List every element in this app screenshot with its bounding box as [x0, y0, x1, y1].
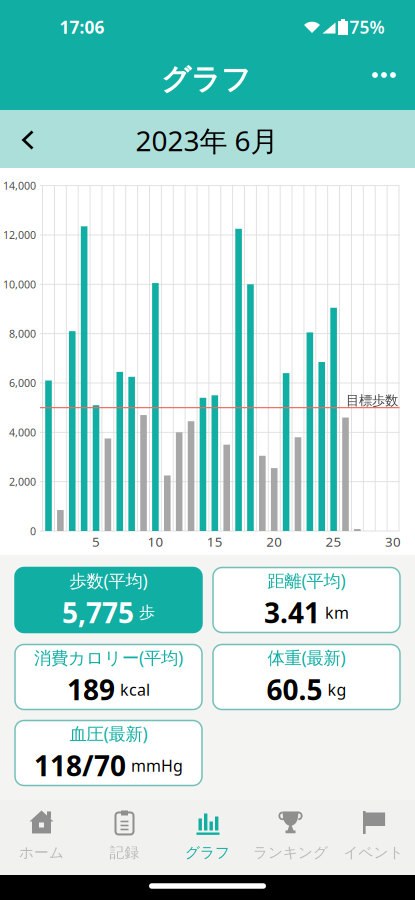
staticText: 118/70	[34, 747, 126, 784]
staticText: 歩数(平均)	[69, 569, 147, 592]
staticText: 15	[207, 533, 223, 550]
staticText: 75%	[349, 15, 384, 38]
button[interactable]	[372, 72, 396, 78]
button[interactable]: 体重(最新)	[213, 644, 400, 709]
button[interactable]: 記録	[83, 800, 166, 875]
staticText: 5,775	[62, 594, 134, 631]
staticText: 2,000	[9, 475, 36, 489]
button[interactable]: 消費カロリー(平均)	[15, 644, 202, 709]
staticText: 25	[326, 533, 342, 550]
staticText: 6,000	[9, 376, 36, 390]
staticText: 10,000	[3, 277, 36, 291]
button[interactable]	[22, 130, 34, 150]
button[interactable]: ホーム	[0, 800, 83, 875]
staticText: 2023年 6月	[135, 122, 278, 159]
staticText: kg	[327, 679, 346, 700]
staticText: 60.5	[266, 671, 322, 708]
staticText: km	[325, 602, 349, 623]
staticText: mmHg	[131, 755, 183, 776]
staticText: 記録	[109, 843, 139, 861]
button[interactable]: グラフ	[166, 800, 249, 875]
staticText: 14,000	[3, 178, 36, 193]
staticText: 4,000	[9, 425, 36, 439]
staticText: 8,000	[9, 327, 36, 341]
button[interactable]: 歩数(平均)	[15, 567, 202, 632]
staticText: 12,000	[3, 228, 36, 242]
button[interactable]: ランキング	[249, 800, 332, 875]
staticText: 体重(最新)	[267, 646, 345, 669]
staticText: 距離(平均)	[267, 569, 345, 592]
staticText: 目標歩数	[346, 392, 398, 409]
staticText: 血圧(最新)	[69, 722, 147, 745]
staticText: グラフ	[185, 843, 230, 861]
staticText: 0	[30, 524, 36, 538]
staticText: 5	[92, 533, 100, 550]
staticText: 3.41	[264, 594, 320, 631]
button[interactable]: 血圧(最新)	[15, 720, 202, 785]
staticText: 10	[147, 533, 163, 550]
staticText: 歩	[139, 603, 155, 622]
button[interactable]: 距離(平均)	[213, 567, 400, 632]
staticText: ランキング	[253, 843, 328, 861]
staticText: 189	[67, 671, 115, 708]
button[interactable]: イベント	[332, 800, 415, 875]
staticText: 消費カロリー(平均)	[34, 646, 183, 669]
staticText: kcal	[120, 679, 150, 700]
staticText: 20	[266, 533, 282, 550]
staticText: ホーム	[19, 843, 64, 861]
staticText: イベント	[343, 843, 403, 861]
staticText: 30	[385, 533, 401, 550]
staticText: 17:06	[59, 15, 104, 38]
staticText: グラフ	[161, 61, 251, 97]
